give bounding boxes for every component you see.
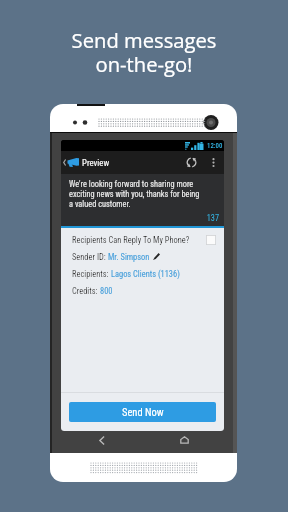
- button[interactable]: Navigate up: [61, 151, 110, 174]
- button[interactable]: Recipients:: [61, 265, 224, 282]
- staticText: Sender ID:: [72, 252, 108, 262]
- button[interactable]: Send Now: [69, 402, 216, 422]
- staticText: 137: [61, 213, 219, 223]
- button[interactable]: More options: [203, 151, 224, 174]
- staticText: Lagos Clients (1136): [111, 269, 180, 279]
- button[interactable]: Refresh: [180, 151, 203, 174]
- staticText: Send messages on-the-go!: [0, 26, 288, 78]
- button[interactable]: Recipients Can Reply To My Phone?: [61, 231, 224, 248]
- staticText: Recipients:: [72, 269, 111, 279]
- staticText: Preview: [82, 158, 110, 168]
- staticText: Send Now: [122, 406, 164, 418]
- staticText: 800: [100, 286, 113, 296]
- button[interactable]: Back: [61, 429, 143, 451]
- button[interactable]: Sender ID:: [61, 248, 224, 265]
- staticText: We're looking forward to sharing more ex…: [69, 179, 201, 209]
- button[interactable]: Home: [143, 429, 226, 451]
- staticText: Credits:: [72, 286, 100, 296]
- staticText: 12:00: [207, 142, 223, 150]
- staticText: Recipients Can Reply To My Phone?: [72, 235, 190, 245]
- button[interactable]: Credits:: [61, 282, 224, 299]
- staticText: Mr. Simpson: [108, 252, 150, 262]
